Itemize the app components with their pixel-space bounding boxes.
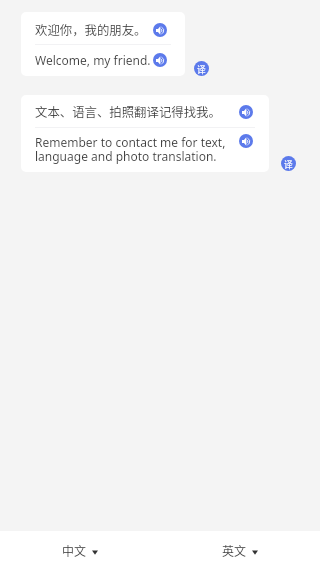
- staticText: 英文: [222, 542, 247, 559]
- button[interactable]: 文本、语言、拍照翻译记得找我。: [21, 95, 269, 127]
- staticText: 中文: [62, 542, 87, 559]
- staticText: Remember to contact me for text, languag…: [35, 134, 239, 164]
- button[interactable]: Play audio: [239, 134, 253, 148]
- staticText: 文本、语言、拍照翻译记得找我。: [35, 103, 239, 121]
- button[interactable]: Welcome, my friend.: [21, 45, 185, 76]
- button[interactable]: 中文: [56, 535, 104, 564]
- button[interactable]: Translate: [281, 156, 296, 171]
- button[interactable]: Play audio: [153, 23, 167, 37]
- button[interactable]: Play audio: [239, 105, 253, 119]
- button[interactable]: 英文: [216, 535, 264, 564]
- staticText: 译: [284, 158, 293, 170]
- staticText: 译: [197, 63, 206, 75]
- staticText: Welcome, my friend.: [35, 52, 153, 68]
- button[interactable]: 欢迎你，我的朋友。: [21, 12, 185, 44]
- button[interactable]: Remember to contact me for text, languag…: [21, 128, 269, 172]
- staticText: 欢迎你，我的朋友。: [35, 21, 153, 39]
- button[interactable]: Play audio: [153, 53, 167, 67]
- button[interactable]: Translate: [194, 61, 209, 76]
